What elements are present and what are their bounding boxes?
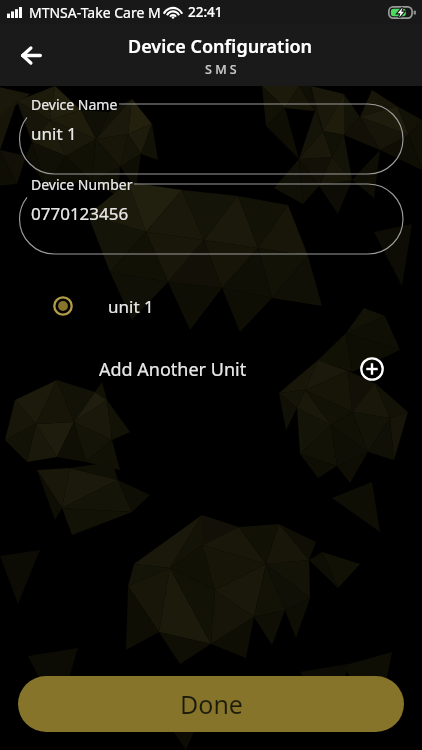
button[interactable]: Add Another Unit [95, 351, 251, 388]
staticText: Device Configuration [128, 34, 313, 59]
staticText: Device Name [31, 95, 118, 114]
staticText: MTNSA-Take Care M [29, 3, 161, 22]
staticText: Add Another Unit [99, 357, 247, 382]
button[interactable]: Done [18, 676, 404, 732]
staticText: unit 1 [31, 122, 77, 145]
button[interactable]: Add another unit [360, 357, 384, 381]
staticText: Device Number [31, 175, 133, 194]
staticText: 22:41 [188, 3, 223, 21]
button[interactable]: Back [6, 32, 52, 78]
staticText: Done [180, 687, 243, 721]
staticText: unit 1 [108, 295, 154, 318]
staticText: 0770123456 [31, 202, 129, 225]
staticText: S M S [205, 61, 237, 78]
button[interactable]: unit 1 [0, 284, 422, 328]
